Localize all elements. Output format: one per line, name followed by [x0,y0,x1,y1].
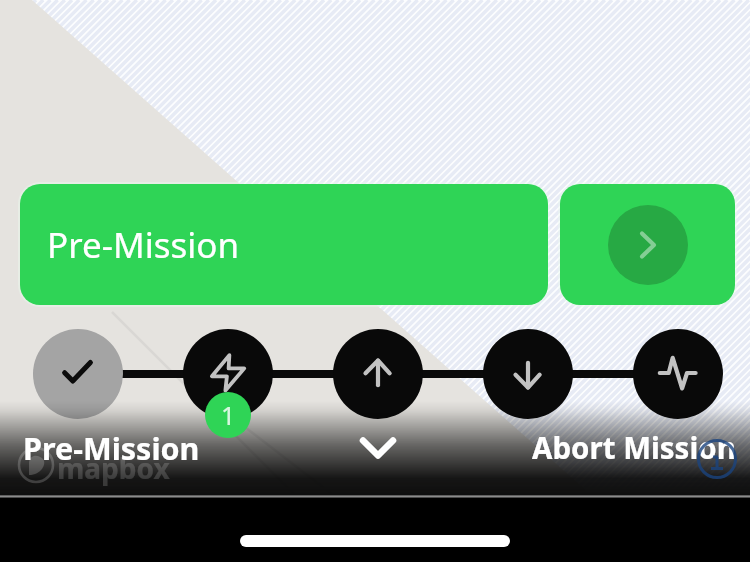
button[interactable]: Land [483,329,573,419]
button[interactable]: Pre-Mission completed [33,329,123,419]
staticText: 1 [221,398,236,432]
staticText: mapbox [57,449,170,487]
button[interactable]: 1 pending task [205,392,251,438]
button[interactable]: Telemetry [633,329,723,419]
button[interactable]: Takeoff [333,329,423,419]
button[interactable]: Expand mission details [351,428,405,468]
button[interactable]: Pre-Mission [23,427,200,467]
button[interactable]: Pre-Mission [20,184,548,305]
button[interactable]: Map information [697,439,737,479]
staticText: Pre-Mission [47,221,240,269]
button[interactable]: Abort Mission [532,427,736,467]
button[interactable]: Start next step [560,184,735,305]
button[interactable]: Power on [183,329,273,419]
